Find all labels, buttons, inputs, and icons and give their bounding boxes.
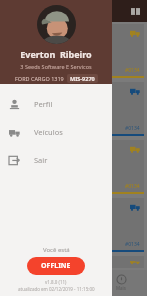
staticText: Rua Conselheiro Brotero, 230 xyxy=(7,28,83,35)
staticText: Histórico xyxy=(72,285,91,291)
staticText: #0134 xyxy=(125,67,140,74)
staticText: Rua Conselheiro Brotero, 230 xyxy=(7,260,83,264)
button[interactable]: Entregas (2) xyxy=(17,275,51,291)
staticText: atualizado em 02/12/2019 - 11:15:00 xyxy=(18,286,95,292)
staticText: Entregas (2) xyxy=(21,285,47,291)
button[interactable]: Mais xyxy=(112,275,130,291)
staticText: FORD CARGO 1319 xyxy=(15,75,64,82)
staticText: 3 Seeds Software E Servicos xyxy=(20,63,92,70)
staticText: Sair xyxy=(34,155,48,165)
button[interactable]: Rua Conselheiro Brotero, 230 xyxy=(3,24,144,78)
staticText: 11:20h xyxy=(7,125,23,132)
staticText: Mais xyxy=(116,285,126,291)
button[interactable]: OFFLINE xyxy=(27,257,85,275)
staticText: São Paulo - SP xyxy=(7,95,41,102)
button[interactable]: Rua Conselheiro Brotero, 230 xyxy=(3,82,144,136)
button[interactable]: Relatórios xyxy=(129,5,141,17)
staticText: #0134 xyxy=(125,125,140,132)
staticText: v1.8.0 (11) xyxy=(45,279,67,285)
staticText: MIS-9270 xyxy=(70,75,95,82)
staticText: #0134 xyxy=(125,183,140,190)
staticText: Perfil xyxy=(34,99,53,109)
button[interactable]: Sair xyxy=(0,146,112,174)
staticText: 11:20h xyxy=(7,67,23,74)
staticText: #0134 xyxy=(125,241,140,248)
button[interactable]: Rua Conselheiro Brotero, 230 xyxy=(3,140,144,194)
staticText: São Paulo - SP xyxy=(7,153,41,160)
button[interactable]: Rua Conselheiro Brotero, 230 xyxy=(3,198,144,252)
staticText: Veículos xyxy=(34,127,63,137)
button[interactable]: Histórico xyxy=(68,275,95,291)
staticText: OFFLINE xyxy=(41,261,71,271)
button[interactable]: Veículos xyxy=(0,118,112,146)
button[interactable]: Rua Conselheiro Brotero, 230 xyxy=(3,256,144,268)
button[interactable]: Foto do perfil xyxy=(37,5,76,44)
button[interactable]: Perfil xyxy=(0,90,112,118)
staticText: Everton Ribeiro xyxy=(20,48,92,60)
staticText: Você está xyxy=(43,246,70,254)
